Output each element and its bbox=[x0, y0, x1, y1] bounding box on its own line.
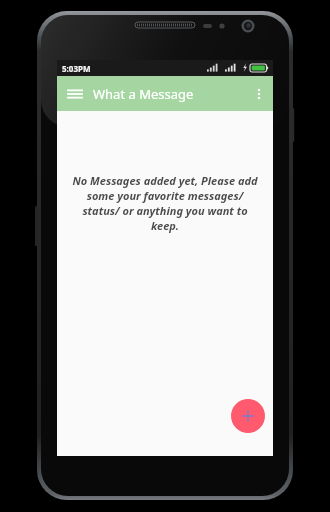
staticText: 5:03PM bbox=[62, 63, 91, 74]
button[interactable]: Add message bbox=[231, 399, 265, 433]
button[interactable]: More options bbox=[247, 82, 271, 106]
staticText: What a Message bbox=[93, 85, 194, 103]
staticText: No Messages added yet, Please add some y… bbox=[69, 173, 261, 233]
button[interactable]: Open navigation drawer bbox=[63, 82, 87, 106]
